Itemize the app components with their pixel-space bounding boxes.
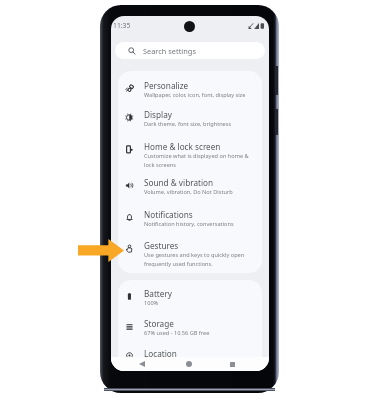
staticText: Wallpaper, color, icon, font, display si… [144, 91, 246, 99]
staticText: Battery [144, 288, 173, 299]
button[interactable]: Battery [118, 285, 262, 310]
staticText: 100% [144, 299, 159, 307]
button[interactable]: Search settings [115, 42, 265, 59]
staticText: Display [144, 109, 172, 120]
button[interactable]: Personalize [118, 77, 262, 102]
staticText: Notification history, conversations [144, 220, 234, 228]
button[interactable]: Sound & vibration [118, 174, 262, 199]
button[interactable]: Recent apps [223, 358, 241, 370]
button[interactable]: Back [133, 358, 151, 370]
button[interactable]: Storage [118, 315, 262, 340]
staticText: Search settings [143, 46, 196, 56]
button[interactable]: Gestures [118, 237, 262, 270]
staticText: Gestures [144, 240, 179, 251]
staticText: Notifications [144, 209, 193, 220]
other: Arrow pointing to Gestures [78, 239, 124, 262]
staticText: Dark theme, font size, brightness [144, 120, 232, 128]
staticText: Personalize [144, 80, 189, 91]
staticText: 11:35 [113, 21, 131, 30]
button[interactable]: Notifications [118, 206, 262, 231]
staticText: Customize what is displayed on home & lo… [144, 152, 249, 168]
button[interactable]: Location [118, 345, 262, 362]
staticText: Use gestures and keys to quickly open fr… [144, 251, 245, 267]
staticText: Volume, vibration, Do Not Disturb [144, 188, 233, 196]
staticText: Home & lock screen [144, 141, 221, 152]
staticText: Location [144, 348, 177, 359]
staticText: Sound & vibration [144, 177, 214, 188]
button[interactable]: Display [118, 106, 262, 131]
staticText: 67% used - 10.56 GB free [144, 329, 210, 337]
staticText: Storage [144, 318, 174, 329]
button[interactable]: Home [180, 358, 198, 370]
button[interactable]: Home & lock screen [118, 138, 262, 171]
